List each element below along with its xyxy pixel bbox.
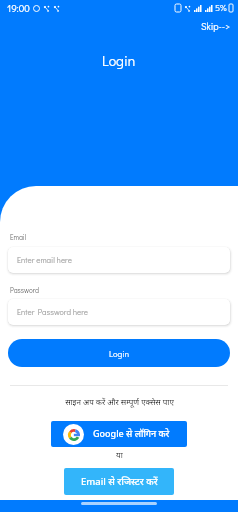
staticText: Login (109, 348, 130, 359)
button[interactable]: Email से रजिस्टर करें (64, 468, 174, 495)
staticText: 5% (215, 2, 227, 14)
other: Home (81, 502, 157, 505)
staticText: साइन अप करें और सम्पूर्ण एक्सेस पाए (65, 398, 174, 408)
staticText: Enter email here (17, 255, 72, 265)
staticText: Login (102, 51, 136, 69)
staticText: Password (10, 286, 39, 295)
staticText: Email से रजिस्टर करें (81, 476, 158, 488)
button[interactable]: Enter email here (8, 247, 230, 273)
button[interactable]: Google से लॉगिन करे (51, 421, 187, 447)
staticText: या (116, 451, 123, 461)
staticText: Google से लॉगिन करे (93, 429, 170, 441)
staticText: Skip--> (201, 20, 230, 32)
button[interactable]: Enter Password here (8, 299, 230, 325)
button[interactable]: Skip--> (198, 18, 233, 34)
staticText: Enter Password here (17, 307, 88, 317)
button[interactable]: Login (8, 339, 230, 367)
staticText: 19:00 (7, 2, 30, 15)
staticText: Email (10, 233, 27, 242)
